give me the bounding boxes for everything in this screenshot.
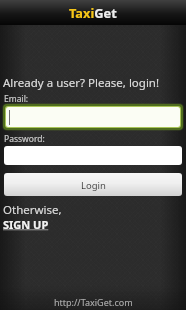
button[interactable]: SIGN UP xyxy=(3,217,49,232)
staticText: Already a user? Please, login! xyxy=(3,75,160,91)
staticText: Email: xyxy=(4,93,29,105)
button[interactable]: Login xyxy=(4,173,182,196)
staticText: http://TaxiGet.com xyxy=(54,296,133,308)
staticText: TaxiGet xyxy=(69,4,117,21)
staticText: Password: xyxy=(4,133,45,145)
staticText: Login xyxy=(81,179,106,192)
button[interactable] xyxy=(4,146,182,165)
staticText: SIGN UP xyxy=(3,217,49,232)
staticText: Otherwise, xyxy=(3,202,62,218)
button[interactable] xyxy=(6,107,180,127)
